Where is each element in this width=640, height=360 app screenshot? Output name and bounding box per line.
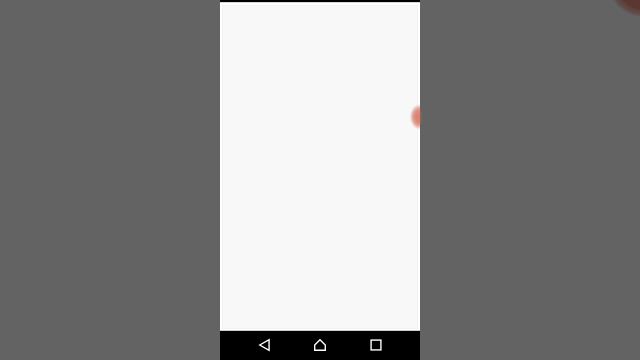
button[interactable]: Home [306,330,334,360]
button[interactable]: Add [400,98,420,136]
button[interactable]: Back [251,330,279,360]
button[interactable]: Recents [362,330,390,360]
